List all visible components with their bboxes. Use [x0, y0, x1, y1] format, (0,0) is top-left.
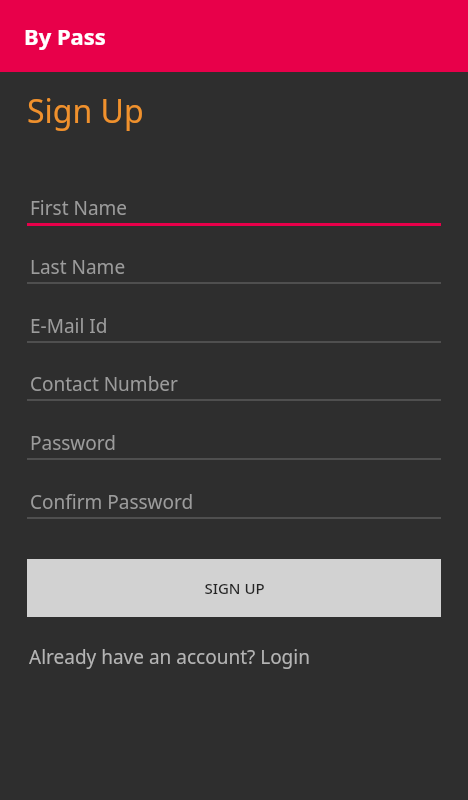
staticText: Password	[30, 430, 116, 456]
button[interactable]: E-Mail Id	[27, 313, 441, 343]
staticText: First Name	[30, 195, 128, 221]
button[interactable]: Confirm Password	[27, 489, 441, 519]
staticText: Already have an account? Login	[29, 644, 310, 670]
button[interactable]: SIGN UP	[27, 559, 441, 617]
staticText: Last Name	[30, 254, 126, 280]
staticText: By Pass	[24, 21, 106, 51]
staticText: Sign Up	[27, 89, 144, 133]
button[interactable]: Password	[27, 430, 441, 460]
button[interactable]: Contact Number	[27, 371, 441, 401]
button[interactable]: Last Name	[27, 254, 441, 284]
staticText: E-Mail Id	[30, 313, 108, 339]
button[interactable]: First Name	[27, 195, 441, 226]
staticText: Contact Number	[30, 371, 178, 397]
button[interactable]: Already have an account? Login	[27, 640, 441, 674]
staticText: SIGN UP	[204, 578, 265, 598]
staticText: Confirm Password	[30, 489, 194, 515]
